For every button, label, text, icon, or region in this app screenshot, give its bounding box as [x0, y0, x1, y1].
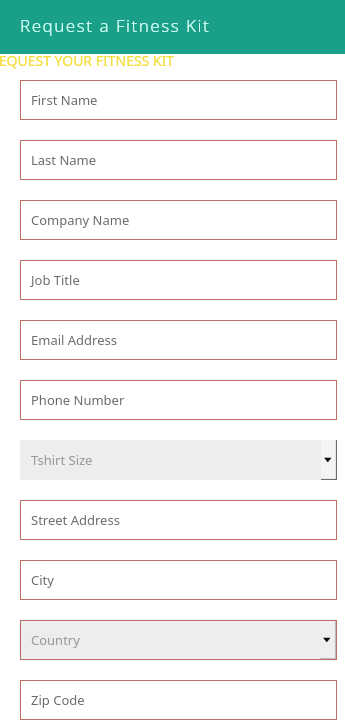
- button[interactable]: First Name: [20, 80, 337, 120]
- button[interactable]: City: [20, 560, 337, 600]
- staticText: Country: [31, 631, 80, 649]
- staticText: REQUEST YOUR FITNESS KIT: [0, 51, 175, 70]
- staticText: City: [31, 571, 54, 589]
- button[interactable]: Last Name: [20, 140, 337, 180]
- button[interactable]: Company Name: [20, 200, 337, 240]
- staticText: First Name: [31, 91, 98, 109]
- staticText: Company Name: [31, 211, 130, 229]
- button[interactable]: Open dropdown: [320, 621, 336, 659]
- button[interactable]: Phone Number: [20, 380, 337, 420]
- button[interactable]: Street Address: [20, 500, 337, 540]
- button[interactable]: Open dropdown: [321, 440, 337, 480]
- button[interactable]: Country: [20, 620, 337, 660]
- staticText: Email Address: [31, 331, 117, 349]
- staticText: Job Title: [31, 271, 80, 289]
- staticText: Tshirt Size: [31, 451, 93, 469]
- button[interactable]: Job Title: [20, 260, 337, 300]
- staticText: Request a Fitness Kit: [20, 14, 211, 37]
- button[interactable]: Tshirt Size: [20, 440, 337, 480]
- staticText: Phone Number: [31, 391, 125, 409]
- staticText: Last Name: [31, 151, 97, 169]
- button[interactable]: Email Address: [20, 320, 337, 360]
- staticText: Zip Code: [31, 691, 85, 709]
- button[interactable]: Zip Code: [20, 680, 337, 720]
- staticText: Street Address: [31, 511, 120, 529]
